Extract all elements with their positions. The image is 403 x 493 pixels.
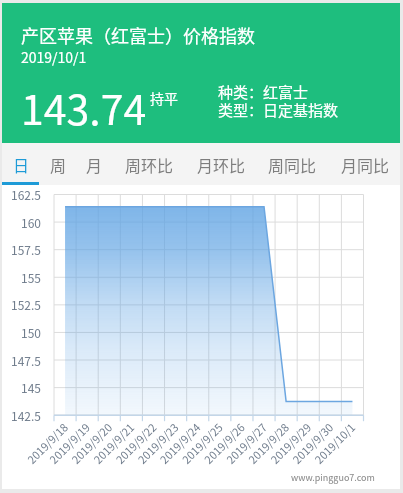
staticText: 产区苹果（红富士）价格指数: [21, 22, 255, 48]
button[interactable]: 周同比: [265, 143, 319, 185]
staticText: 周: [50, 153, 67, 176]
button[interactable]: 月环比: [194, 143, 248, 185]
staticText: 种类：红富士: [218, 81, 309, 103]
staticText: 月: [86, 153, 103, 176]
staticText: 持平: [150, 88, 178, 108]
staticText: 月环比: [197, 153, 246, 176]
button[interactable]: 月同比: [338, 143, 392, 185]
staticText: 类型：日定基指数: [218, 99, 339, 121]
staticText: 月同比: [341, 153, 390, 176]
staticText: 143.74: [21, 77, 147, 136]
staticText: 2019/10/1: [21, 47, 87, 67]
button[interactable]: 日: [3, 143, 39, 185]
staticText: 日: [13, 153, 30, 176]
staticText: 周环比: [125, 153, 174, 176]
button[interactable]: 月: [76, 143, 112, 185]
button[interactable]: 周: [40, 143, 76, 185]
button[interactable]: 周环比: [122, 143, 176, 185]
staticText: 周同比: [268, 153, 317, 176]
